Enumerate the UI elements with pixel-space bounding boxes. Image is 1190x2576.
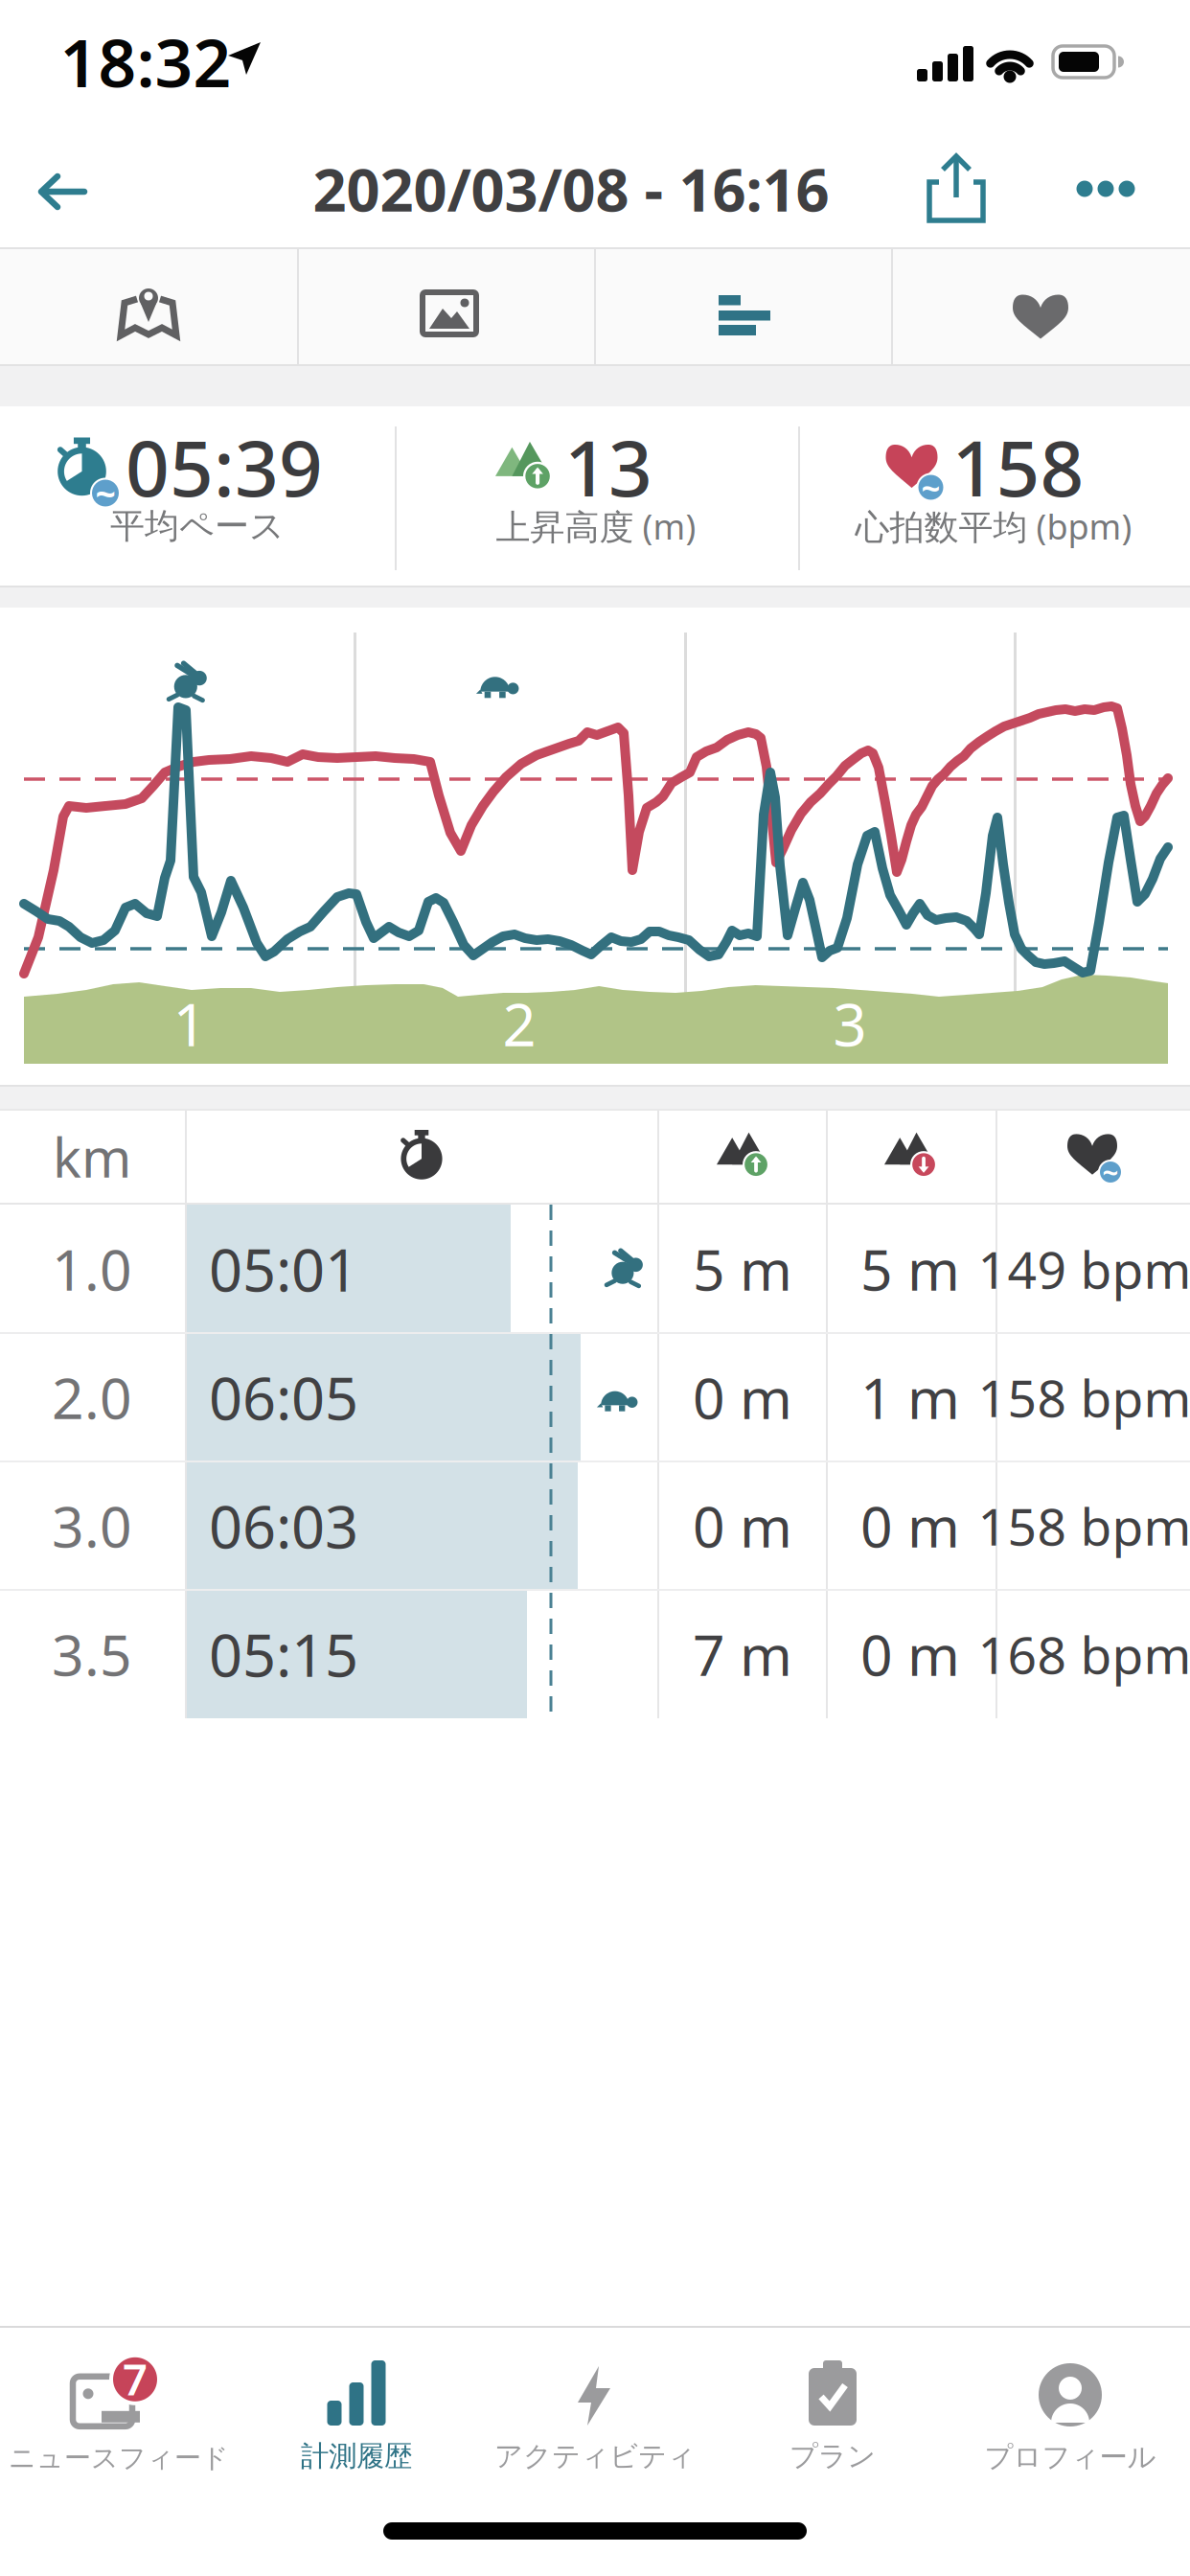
staticText: ニュースフィード	[9, 2442, 229, 2475]
button[interactable]: More	[1075, 179, 1136, 198]
button[interactable]: Share	[927, 153, 985, 224]
button[interactable]: History	[238, 2331, 475, 2503]
staticText: ~	[95, 469, 115, 517]
staticText: 1	[173, 984, 206, 1063]
button[interactable]: Photos	[297, 249, 594, 366]
staticText: アクティビティ	[494, 2439, 696, 2473]
staticText: ~	[1102, 1153, 1119, 1191]
staticText: 158 bpm	[978, 1363, 1190, 1431]
staticText: 1 m	[860, 1360, 960, 1435]
staticText: 2020/03/08 - 16:16	[313, 150, 829, 228]
staticText: 1.0	[52, 1231, 132, 1306]
staticText: 18:32	[60, 17, 231, 106]
staticText: 158	[952, 416, 1084, 518]
staticText: 7 m	[693, 1617, 792, 1691]
staticText: プラン	[790, 2439, 876, 2473]
staticText: 2.0	[52, 1360, 132, 1435]
staticText: 0 m	[693, 1360, 792, 1435]
staticText: 3	[833, 984, 867, 1063]
staticText: 7	[123, 2350, 148, 2407]
staticText: 5 m	[693, 1231, 792, 1306]
button[interactable]: Activity	[476, 2334, 714, 2506]
staticText: 149 bpm	[978, 1235, 1190, 1303]
staticText: 06:03	[209, 1487, 358, 1565]
staticText: 0 m	[693, 1488, 792, 1563]
staticText: プロフィール	[984, 2440, 1156, 2474]
button[interactable]: Map	[0, 249, 297, 366]
staticText: 3.5	[52, 1617, 132, 1691]
button[interactable]: Heart rate	[892, 249, 1189, 366]
button[interactable]: News feed	[0, 2334, 238, 2506]
staticText: 心拍数平均 (bpm)	[855, 503, 1132, 549]
staticText: 05:15	[209, 1615, 358, 1693]
staticText: 計測履歴	[301, 2439, 412, 2473]
staticText: 05:01	[209, 1230, 358, 1308]
staticText: 0 m	[860, 1488, 960, 1563]
staticText: 05:39	[126, 416, 323, 518]
staticText: 平均ペース	[110, 505, 285, 547]
staticText: 158 bpm	[978, 1492, 1190, 1560]
staticText: 13	[564, 416, 652, 518]
button[interactable]: Statistics	[595, 249, 892, 366]
staticText: 0 m	[860, 1617, 960, 1691]
staticText: km	[53, 1121, 131, 1192]
staticText: 168 bpm	[978, 1620, 1190, 1688]
staticText: ~	[921, 465, 940, 509]
staticText: 2	[503, 984, 536, 1063]
button[interactable]: Back	[0, 163, 126, 220]
staticText: 3.0	[52, 1488, 132, 1563]
staticText: 5 m	[860, 1231, 960, 1306]
button[interactable]: Profile	[951, 2333, 1189, 2505]
staticText: 06:05	[209, 1358, 358, 1436]
button[interactable]: Plan	[714, 2331, 951, 2503]
staticText: 上昇高度 (m)	[496, 503, 696, 549]
